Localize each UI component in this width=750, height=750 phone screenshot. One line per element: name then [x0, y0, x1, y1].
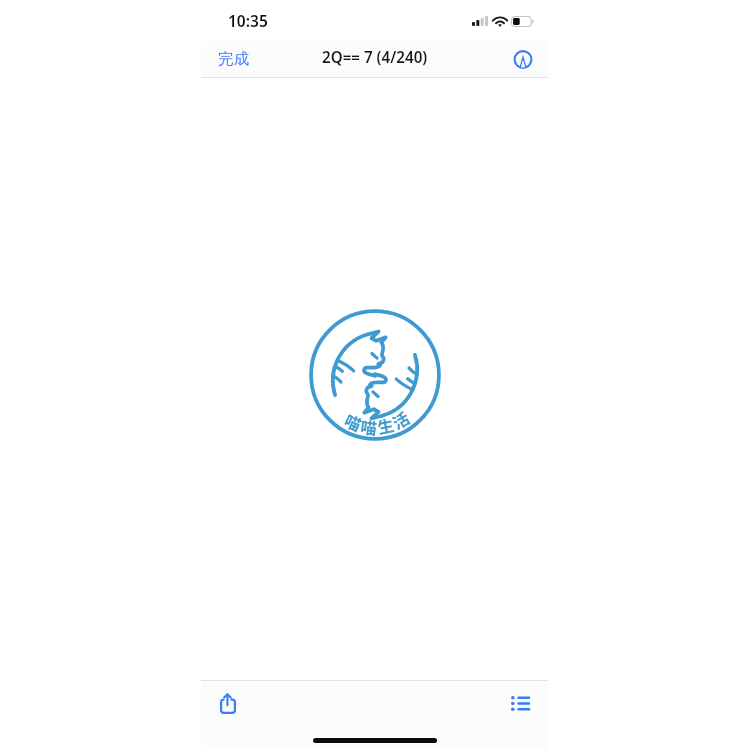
- staticText: 2Q== 7 (4/240): [322, 47, 428, 68]
- staticText: 完成: [218, 49, 249, 69]
- button[interactable]: Reader view: [503, 41, 548, 78]
- staticText: 10:35: [228, 10, 268, 31]
- button[interactable]: Bookmarks: [498, 681, 542, 725]
- button[interactable]: 完成: [201, 41, 261, 78]
- button[interactable]: Share: [206, 681, 250, 725]
